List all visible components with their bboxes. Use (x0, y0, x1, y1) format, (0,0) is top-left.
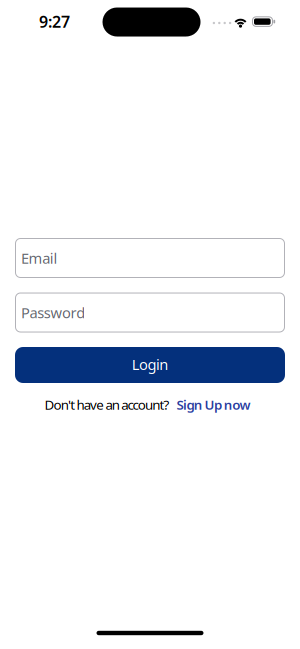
staticText: Email (21, 248, 57, 268)
staticText: Don't have an account? (44, 396, 170, 413)
staticText: Password (21, 303, 85, 322)
button[interactable]: Login (15, 347, 285, 383)
secureTextField[interactable]: Password (15, 292, 285, 332)
staticText: Login (132, 355, 168, 374)
staticText: Sign Up now (177, 396, 251, 413)
textField[interactable]: Email (15, 238, 285, 278)
button[interactable]: Sign Up now (177, 396, 251, 413)
staticText: 9:27 (39, 11, 70, 32)
